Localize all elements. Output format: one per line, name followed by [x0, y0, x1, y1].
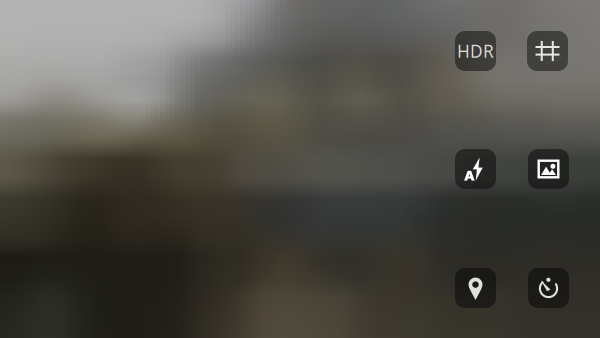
button[interactable]: Location — [455, 268, 496, 308]
button[interactable]: Flash — [455, 149, 496, 189]
button[interactable]: Photo Library — [528, 149, 569, 189]
staticText: HDR — [457, 39, 494, 62]
button[interactable]: HDR — [455, 31, 496, 71]
button[interactable]: Grid — [527, 31, 568, 71]
button[interactable]: Timer — [528, 268, 569, 308]
